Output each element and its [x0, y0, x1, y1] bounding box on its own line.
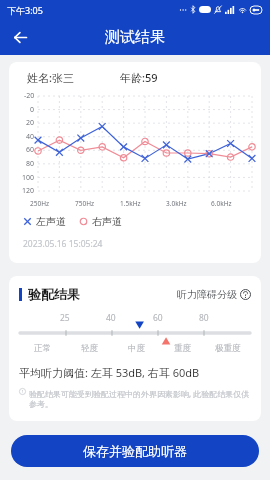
staticText: 100 — [22, 173, 35, 183]
button[interactable]: 听力障碍分级 — [177, 288, 251, 301]
staticText: 听力障碍分级 — [177, 288, 237, 301]
staticText: 0 — [30, 105, 35, 115]
button[interactable]: 保存并验配助听器 — [11, 435, 259, 467]
staticText: 80 — [199, 312, 209, 324]
staticText: 25 — [60, 312, 70, 324]
staticText: 姓名:张三 — [27, 70, 74, 85]
staticText: 验配结果 — [28, 286, 80, 302]
staticText: 下午3:05 — [7, 4, 43, 16]
staticText: 中度 — [128, 343, 145, 354]
staticText: 60 — [26, 145, 35, 155]
staticText: 测试结果 — [105, 28, 165, 47]
button[interactable]: Back — [5, 22, 35, 52]
staticText: 2023.05.16 15:05:24 — [23, 238, 103, 250]
staticText: -20 — [24, 91, 35, 101]
staticText: 保存并验配助听器 — [83, 443, 187, 459]
staticText: 120 — [22, 186, 35, 196]
staticText: 年龄:59 — [120, 70, 158, 85]
staticText: 250Hz — [30, 199, 50, 208]
staticText: 验配结果可能受到验配过程中的外界因素影响, 此验配结果仅供参考。 — [29, 388, 251, 410]
staticText: 1.5kHz — [120, 199, 141, 208]
staticText: 40 — [106, 312, 116, 324]
staticText: 750Hz — [75, 199, 95, 208]
staticText: 右声道 — [92, 215, 122, 228]
staticText: 轻度 — [81, 343, 98, 354]
staticText: 3.0kHz — [166, 199, 187, 208]
staticText: 重度 — [174, 343, 191, 354]
staticText: 40 — [26, 132, 35, 142]
staticText: 80 — [26, 159, 35, 169]
staticText: 6.0kHz — [211, 199, 232, 208]
staticText: 60 — [153, 312, 163, 324]
staticText: 20 — [26, 118, 35, 128]
staticText: 左声道 — [36, 215, 66, 228]
staticText: 平均听力阈值: 左耳 53dB, 右耳 60dB — [19, 365, 200, 380]
staticText: 正常 — [34, 343, 51, 354]
staticText: 极重度 — [215, 343, 241, 354]
